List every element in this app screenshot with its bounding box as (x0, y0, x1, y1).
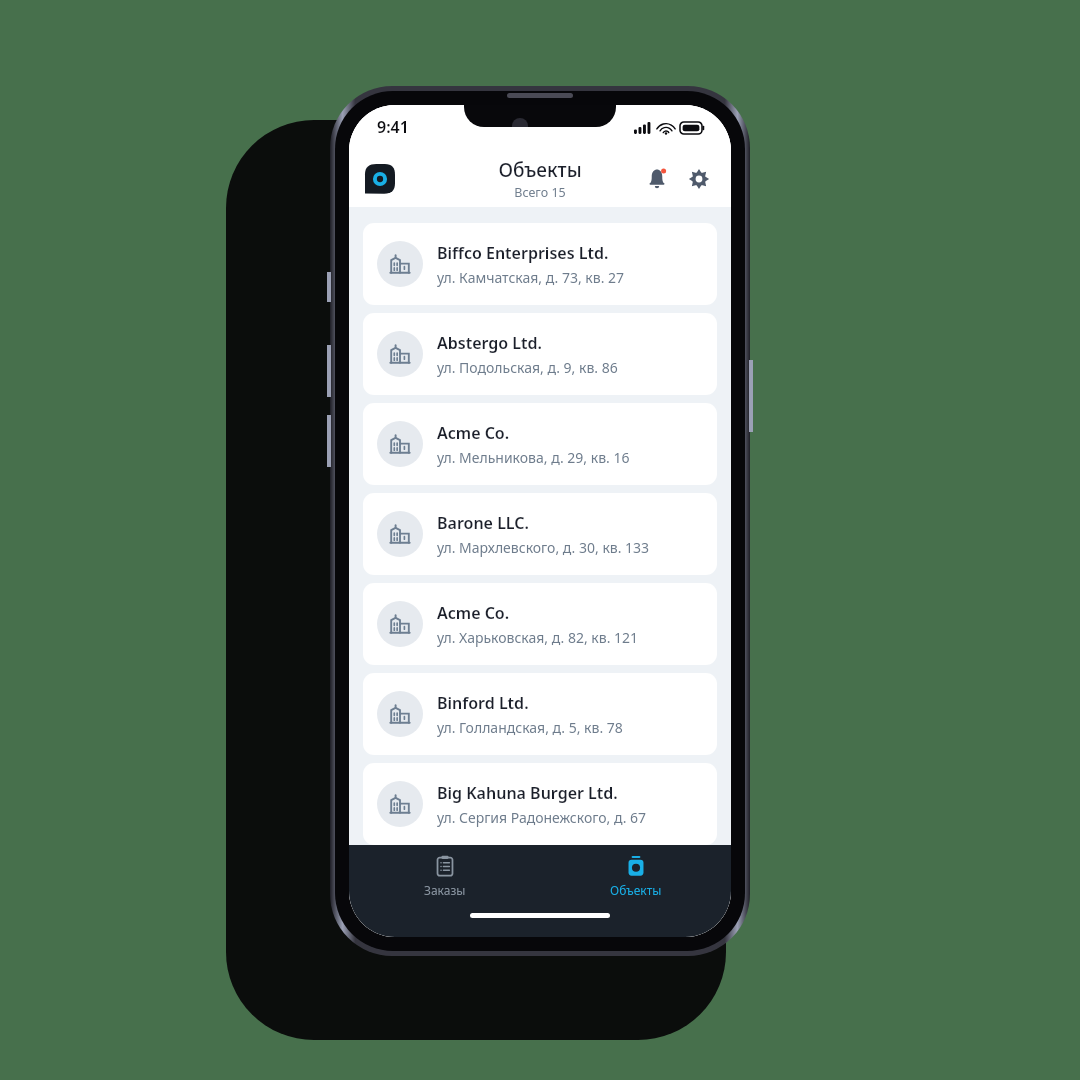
staticText: Объекты (498, 157, 582, 183)
button[interactable]: Notifications (641, 163, 673, 195)
button[interactable]: Binford Ltd. (363, 673, 717, 755)
button[interactable]: App logo (363, 162, 397, 196)
staticText: 9:41 (377, 116, 409, 138)
button[interactable]: Заказы (349, 845, 540, 907)
button[interactable]: Biffco Enterprises Ltd. (363, 223, 717, 305)
staticText: ул. Харьковская, д. 82, кв. 121 (437, 628, 639, 647)
button[interactable]: Settings (683, 163, 715, 195)
button[interactable]: Barone LLC. (363, 493, 717, 575)
button[interactable]: Abstergo Ltd. (363, 313, 717, 395)
staticText: ул. Подольская, д. 9, кв. 86 (437, 358, 618, 377)
staticText: Acme Co. (437, 602, 510, 624)
staticText: Заказы (424, 882, 466, 898)
staticText: Binford Ltd. (437, 692, 529, 714)
staticText: ул. Сергия Радонежского, д. 67 (437, 808, 647, 827)
staticText: Biffco Enterprises Ltd. (437, 242, 609, 264)
button[interactable]: Acme Co. (363, 583, 717, 665)
staticText: Объекты (610, 882, 662, 898)
staticText: Acme Co. (437, 422, 510, 444)
button[interactable]: Объекты (540, 845, 731, 907)
staticText: Abstergo Ltd. (437, 332, 543, 354)
staticText: Barone LLC. (437, 512, 529, 534)
button[interactable]: Big Kahuna Burger Ltd. (363, 763, 717, 845)
button[interactable]: Acme Co. (363, 403, 717, 485)
staticText: ул. Мельникова, д. 29, кв. 16 (437, 448, 630, 467)
staticText: ул. Голландская, д. 5, кв. 78 (437, 718, 623, 737)
staticText: Всего 15 (514, 184, 566, 201)
staticText: ул. Камчатская, д. 73, кв. 27 (437, 268, 625, 287)
staticText: Big Kahuna Burger Ltd. (437, 782, 618, 804)
staticText: ул. Мархлевского, д. 30, кв. 133 (437, 538, 650, 557)
